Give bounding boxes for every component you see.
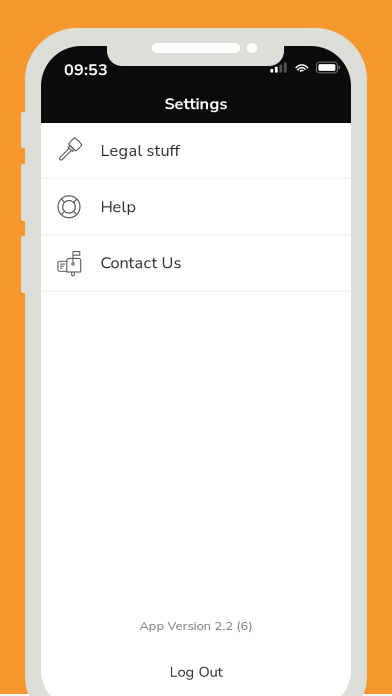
button[interactable]: Contact Us [41, 235, 351, 291]
button[interactable]: Log Out [41, 650, 351, 694]
staticText: Contact Us [100, 252, 181, 274]
staticText: Settings [164, 93, 227, 115]
button[interactable]: Help [41, 179, 351, 234]
staticText: Legal stuff [100, 139, 179, 162]
staticText: App Version 2.2 (6) [139, 617, 252, 635]
staticText: Log Out [169, 662, 222, 682]
staticText: Help [100, 196, 135, 218]
staticText: 09:53 [64, 59, 108, 81]
button[interactable]: Legal stuff [41, 123, 351, 178]
